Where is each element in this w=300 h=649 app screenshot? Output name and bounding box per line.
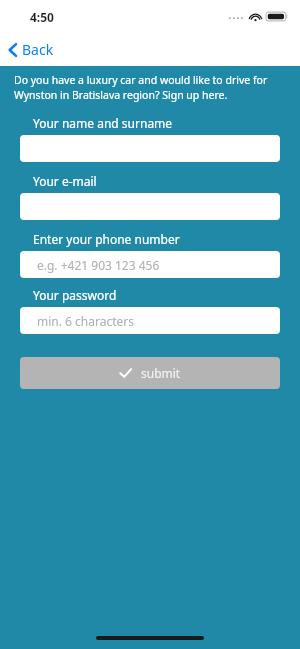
staticText: Your e-mail [33,173,280,189]
staticText: min. 6 characters [37,313,134,329]
staticText: 4:50 [30,9,54,25]
button[interactable] [20,193,280,220]
button[interactable]: min. 6 characters [20,307,280,334]
staticText: e.g. +421 903 123 456 [37,257,160,273]
button[interactable] [20,135,280,162]
staticText: Do you have a luxury car and would like … [14,73,286,102]
staticText: submit [141,365,181,381]
staticText: Back [22,40,54,59]
staticText: Enter your phone number [33,231,280,247]
button[interactable]: submit [20,357,280,389]
staticText: Your name and surname [33,115,280,131]
button[interactable]: Back [0,36,64,63]
button[interactable]: e.g. +421 903 123 456 [20,251,280,278]
staticText: Your password [33,287,280,303]
